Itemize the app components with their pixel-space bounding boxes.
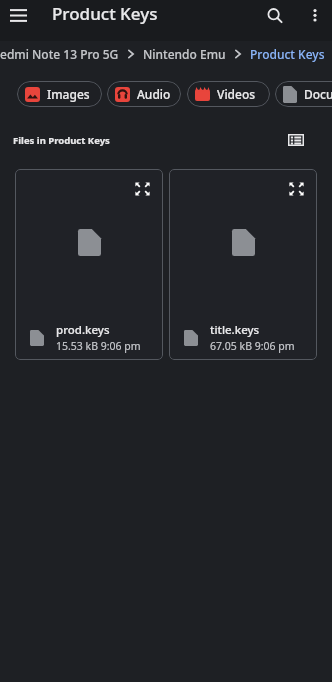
button[interactable]: Expand preview <box>169 169 317 360</box>
staticText: 67.05 kB 9:06 pm <box>210 339 295 353</box>
button[interactable]: Search <box>260 1 290 31</box>
staticText: edmi Note 13 Pro 5G <box>0 46 119 62</box>
button[interactable]: Expand preview <box>135 182 150 196</box>
staticText: prod.keys <box>56 322 110 338</box>
staticText: 15.53 kB 9:06 pm <box>56 339 141 353</box>
button[interactable]: Switch to list view <box>285 129 307 151</box>
button[interactable]: Expand preview <box>15 169 163 360</box>
button[interactable]: More options <box>300 0 330 30</box>
staticText: Documents <box>304 86 332 102</box>
staticText: Videos <box>217 86 256 102</box>
staticText: Files in Product Keys <box>13 134 110 147</box>
button[interactable]: Documents <box>275 81 332 107</box>
staticText: Product Keys <box>250 46 325 62</box>
button[interactable]: Expand preview <box>289 182 304 196</box>
staticText: Audio <box>137 86 171 102</box>
staticText: Product Keys <box>52 2 158 25</box>
button[interactable]: Navigation menu <box>3 0 33 30</box>
staticText: Nintendo Emu <box>143 46 226 62</box>
button[interactable]: Videos <box>187 81 270 107</box>
button[interactable]: Audio <box>107 81 181 107</box>
button[interactable]: Images <box>17 81 102 107</box>
staticText: title.keys <box>210 322 260 338</box>
staticText: Images <box>47 86 90 102</box>
